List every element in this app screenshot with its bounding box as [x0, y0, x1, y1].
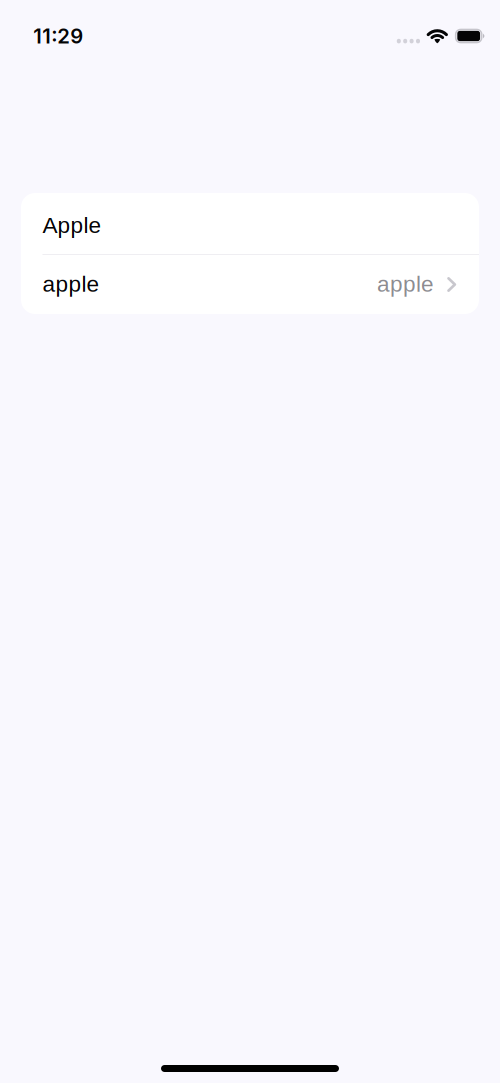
staticText: 11:29 [33, 24, 83, 48]
staticText: Apple [43, 212, 102, 238]
staticText: apple [43, 271, 100, 296]
button[interactable]: apple [21, 255, 479, 314]
button[interactable]: Apple [21, 193, 479, 254]
staticText: apple [377, 271, 434, 296]
